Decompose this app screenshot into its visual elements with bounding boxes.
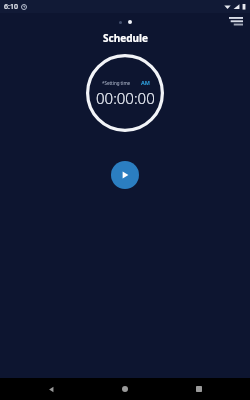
staticText: 00:00:00: [96, 88, 155, 108]
button[interactable]: Home: [114, 378, 136, 400]
button[interactable]: Back: [40, 378, 62, 400]
button[interactable]: Menu: [226, 13, 246, 30]
button[interactable]: Start timer: [111, 161, 139, 189]
button[interactable]: Recent apps: [188, 378, 210, 400]
button[interactable]: Set timer: [86, 54, 164, 132]
staticText: 6:10: [4, 2, 18, 12]
staticText: AM: [141, 79, 150, 86]
staticText: *Setting time: [102, 80, 131, 86]
staticText: Schedule: [103, 31, 148, 45]
